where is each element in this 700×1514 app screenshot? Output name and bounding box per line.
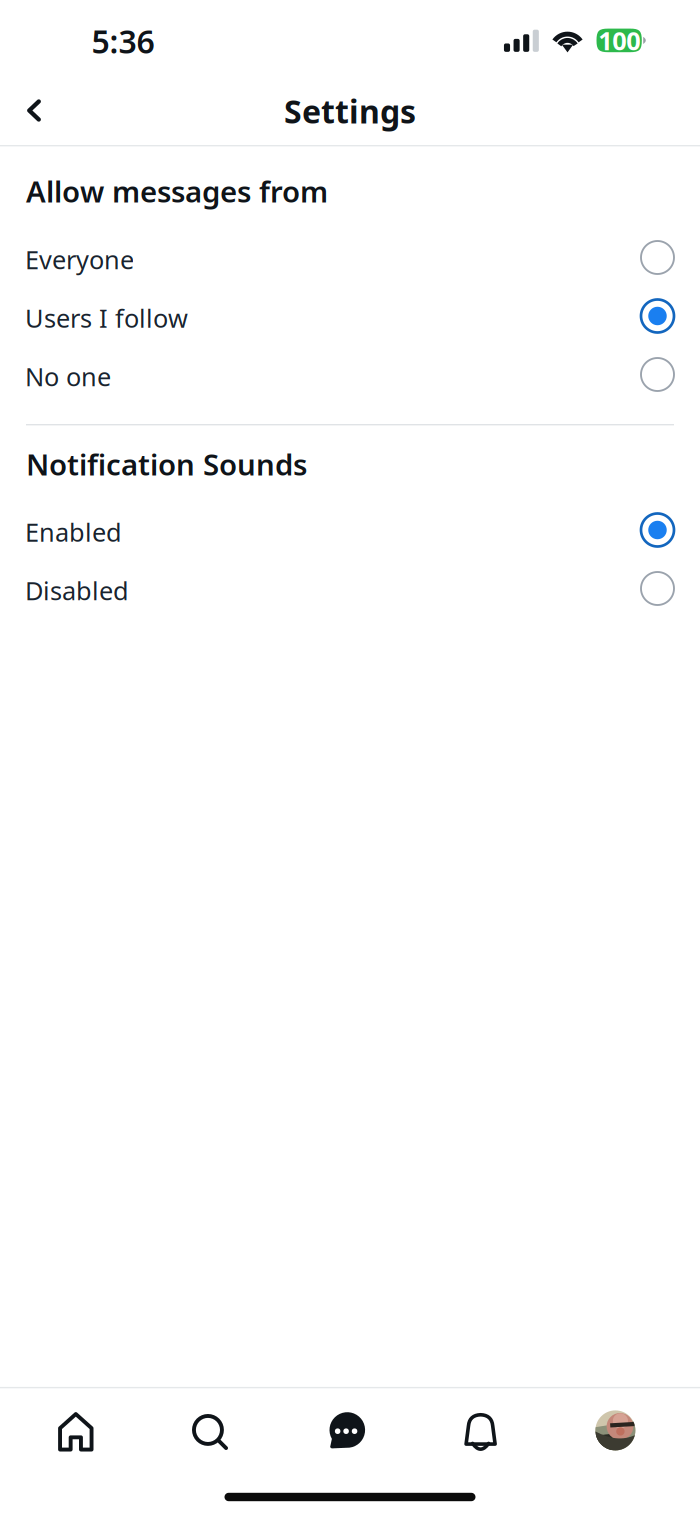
staticText: Disabled	[25, 574, 129, 607]
button[interactable]: Disabled	[0, 561, 700, 620]
staticText: Allow messages from	[26, 171, 328, 210]
button[interactable]: Enabled	[0, 503, 700, 561]
button[interactable]: Profile	[545, 1399, 685, 1461]
staticText: 5:36	[91, 20, 154, 62]
staticText: Users I follow	[25, 301, 188, 335]
button[interactable]: Users I follow	[0, 289, 700, 347]
button[interactable]: No one	[0, 347, 700, 406]
button[interactable]: Home	[6, 1401, 146, 1463]
staticText: Enabled	[25, 515, 122, 549]
button[interactable]: Messages	[276, 1400, 416, 1462]
staticText: Everyone	[25, 243, 134, 276]
staticText: 100	[598, 24, 640, 57]
button[interactable]: Everyone	[0, 230, 700, 289]
staticText: Notification Sounds	[26, 444, 307, 483]
button[interactable]: Back	[4, 78, 64, 142]
staticText: No one	[25, 360, 111, 393]
button[interactable]: Search	[140, 1401, 280, 1463]
staticText: Settings	[284, 90, 416, 132]
button[interactable]: Notifications	[411, 1400, 551, 1462]
